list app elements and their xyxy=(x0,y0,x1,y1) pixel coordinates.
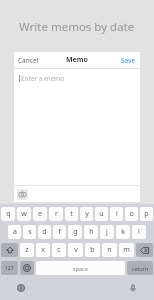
button[interactable]: i xyxy=(110,207,123,221)
staticText: f xyxy=(58,227,61,237)
button[interactable]: Shift xyxy=(1,243,18,257)
button[interactable]: Add photo xyxy=(17,189,28,200)
staticText: u xyxy=(99,209,104,219)
button[interactable]: x xyxy=(36,243,50,257)
staticText: w xyxy=(21,209,27,219)
staticText: x xyxy=(41,245,45,255)
staticText: o xyxy=(129,209,134,219)
button[interactable]: a xyxy=(8,225,21,239)
button[interactable]: return xyxy=(127,261,153,275)
staticText: Enter a memo xyxy=(21,74,65,83)
staticText: Save xyxy=(121,56,136,65)
staticText: t xyxy=(70,209,73,219)
button[interactable]: q xyxy=(1,207,15,221)
staticText: return xyxy=(132,265,149,272)
button[interactable]: r xyxy=(49,207,63,221)
button[interactable]: g xyxy=(68,225,82,239)
button[interactable]: Emoji xyxy=(20,261,34,275)
staticText: n xyxy=(107,245,112,255)
button[interactable]: u xyxy=(95,207,108,221)
staticText: m xyxy=(123,245,130,255)
staticText: Write memos by date xyxy=(19,19,135,35)
button[interactable]: l xyxy=(132,225,146,239)
button[interactable]: e xyxy=(33,207,47,221)
button[interactable]: k xyxy=(116,225,130,239)
staticText: p xyxy=(144,209,149,219)
staticText: Cancel xyxy=(18,56,39,65)
staticText: j xyxy=(106,227,108,237)
staticText: space xyxy=(73,265,88,272)
button[interactable]: m xyxy=(119,243,134,257)
staticText: d xyxy=(42,227,47,237)
staticText: a xyxy=(13,227,17,237)
button[interactable]: Save xyxy=(102,52,136,68)
staticText: y xyxy=(85,209,89,219)
button[interactable]: w xyxy=(17,207,31,221)
button[interactable]: j xyxy=(100,225,114,239)
button[interactable]: Cancel xyxy=(18,52,52,68)
button[interactable]: Voice input xyxy=(126,281,140,295)
button[interactable]: Enter a memo xyxy=(14,69,140,185)
staticText: 123 xyxy=(5,265,14,272)
staticText: s xyxy=(28,227,32,237)
staticText: e xyxy=(38,209,42,219)
button[interactable]: c xyxy=(52,243,66,257)
button[interactable]: Backspace xyxy=(136,243,153,257)
staticText: g xyxy=(73,227,78,237)
button[interactable]: p xyxy=(140,207,153,221)
button[interactable]: b xyxy=(85,243,100,257)
button[interactable]: n xyxy=(102,243,117,257)
button[interactable]: v xyxy=(68,243,83,257)
staticText: k xyxy=(121,227,125,237)
button[interactable]: space xyxy=(36,261,125,275)
button[interactable]: y xyxy=(80,207,93,221)
button[interactable]: h xyxy=(84,225,98,239)
staticText: r xyxy=(55,209,58,219)
button[interactable]: 123 xyxy=(1,261,18,275)
button[interactable]: t xyxy=(65,207,78,221)
staticText: c xyxy=(57,245,61,255)
button[interactable]: o xyxy=(125,207,138,221)
staticText: z xyxy=(25,245,29,255)
staticText: Memo xyxy=(66,55,88,65)
button[interactable]: f xyxy=(53,225,66,239)
button[interactable]: s xyxy=(23,225,36,239)
staticText: i xyxy=(116,209,118,219)
button[interactable]: Change keyboard xyxy=(14,281,28,295)
staticText: b xyxy=(90,245,95,255)
button[interactable]: d xyxy=(38,225,51,239)
staticText: v xyxy=(74,245,78,255)
button[interactable]: z xyxy=(20,243,34,257)
staticText: h xyxy=(89,227,94,237)
staticText: q xyxy=(6,209,11,219)
staticText: l xyxy=(138,227,140,237)
